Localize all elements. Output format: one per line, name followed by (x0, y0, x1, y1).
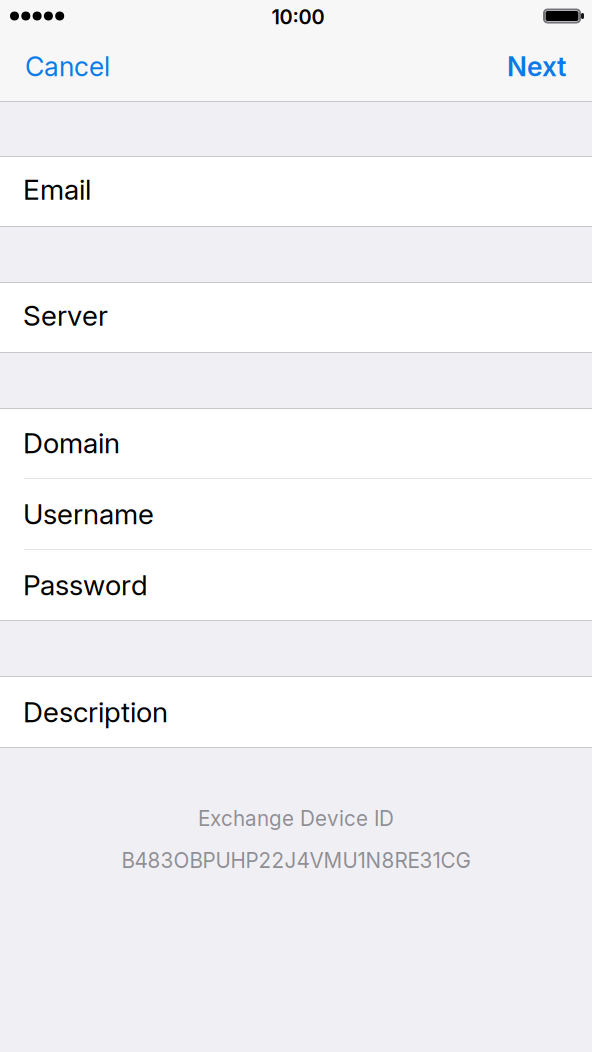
staticText: Domain (23, 426, 120, 460)
button[interactable]: Username (0, 479, 592, 549)
staticText: Next (507, 50, 566, 83)
staticText: 10:00 (271, 5, 324, 29)
staticText: Email (23, 173, 91, 206)
staticText: Exchange Device ID (198, 806, 394, 831)
staticText: Username (23, 497, 154, 531)
staticText: Password (23, 568, 148, 602)
button[interactable]: Password (0, 550, 592, 620)
staticText: Server (23, 299, 108, 332)
staticText: B483OBPUHP22J4VMU1N8RE31CG (121, 848, 470, 873)
staticText: Cancel (25, 50, 110, 83)
button[interactable]: Cancel (0, 32, 128, 101)
staticText: Description (23, 695, 168, 729)
button[interactable]: Next (489, 32, 592, 101)
button[interactable]: Email (0, 157, 592, 226)
button[interactable]: Domain (0, 409, 592, 478)
button[interactable]: Description (0, 677, 592, 747)
button[interactable]: Server (0, 283, 592, 352)
